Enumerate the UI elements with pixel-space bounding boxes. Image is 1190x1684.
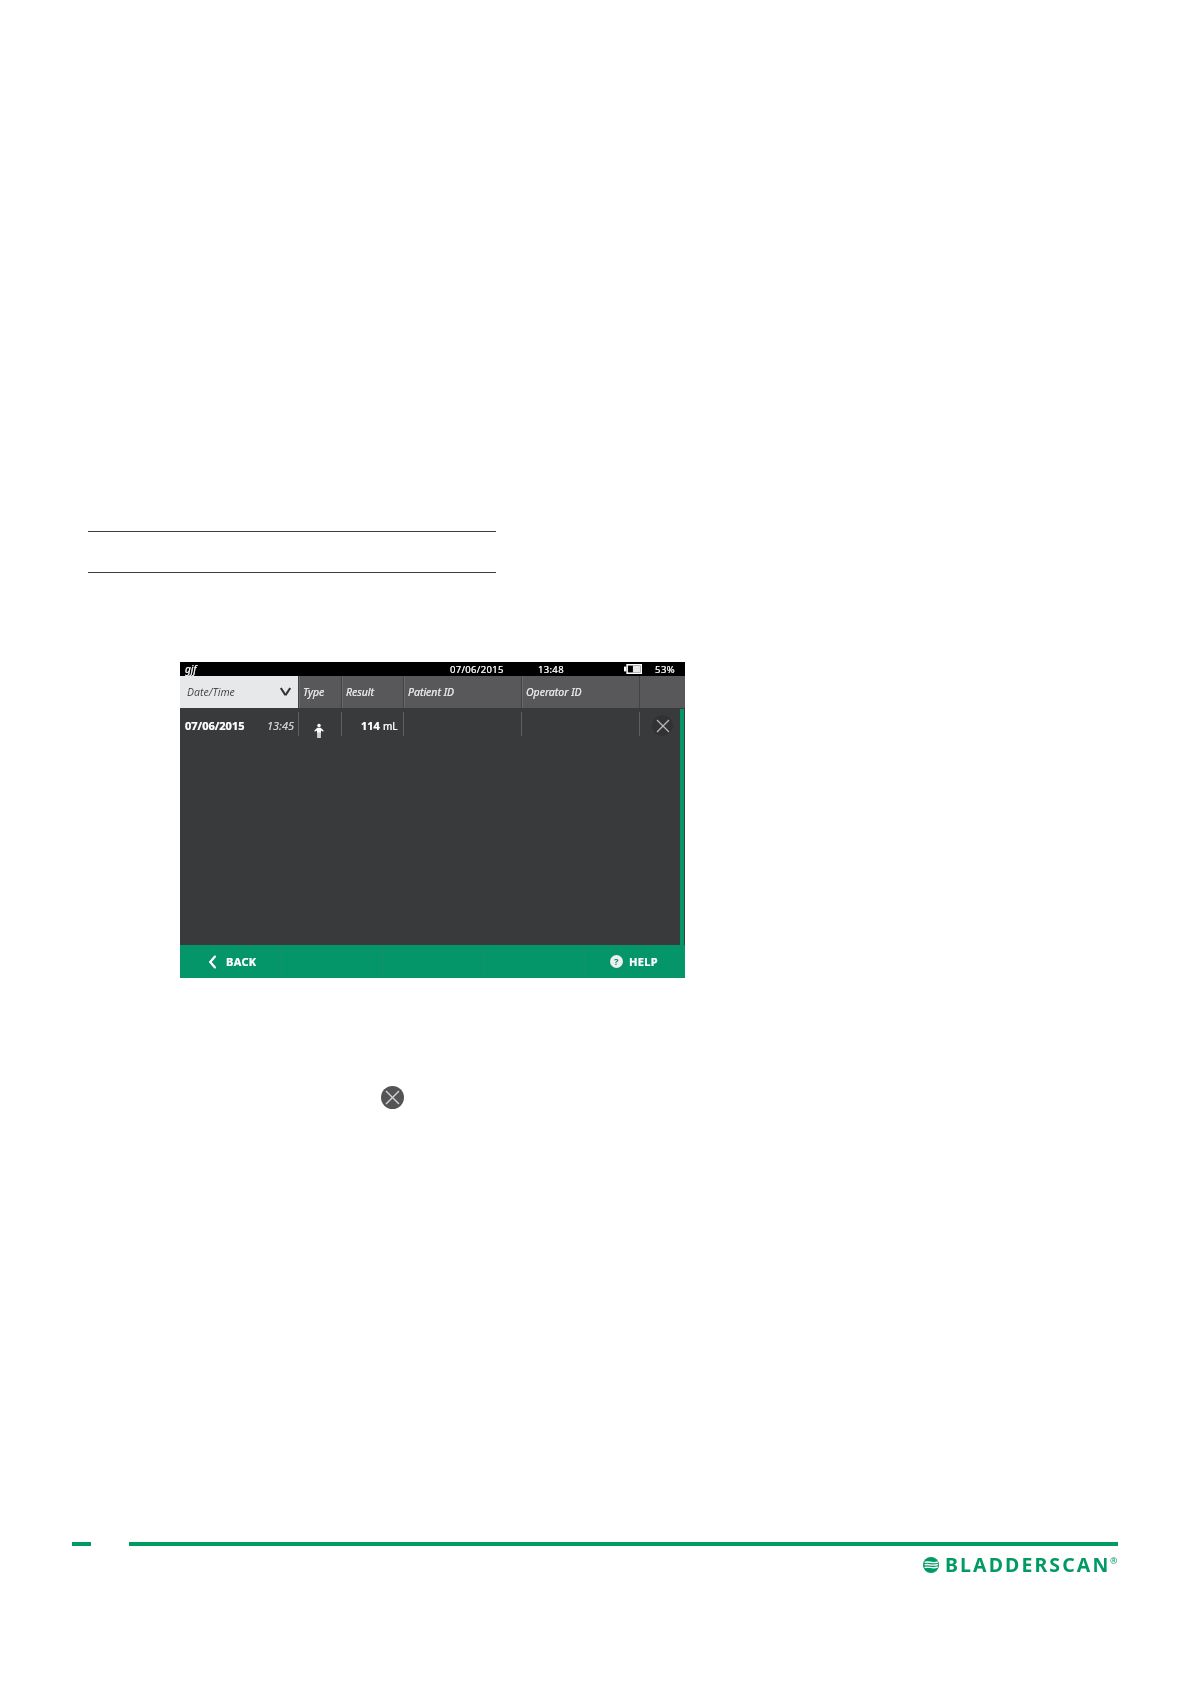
staticText: Date/Time	[187, 685, 235, 699]
staticText: ®	[1110, 1554, 1118, 1566]
staticText: BACK	[226, 954, 257, 969]
button[interactable]: Patient ID	[403, 676, 521, 708]
button[interactable]: ?	[584, 945, 685, 978]
staticText: HELP	[629, 954, 658, 969]
button[interactable]: Operator ID	[521, 676, 639, 708]
staticText: mL	[383, 719, 398, 733]
staticText: Patient ID	[408, 685, 455, 699]
staticText: 114	[361, 718, 380, 733]
button[interactable]	[639, 676, 685, 708]
staticText: 13:48	[538, 663, 564, 676]
staticText: ?	[614, 955, 619, 968]
staticText: Type	[303, 685, 325, 699]
staticText: 13:45	[267, 718, 295, 733]
button[interactable]: Type	[298, 676, 341, 708]
staticText: Result	[346, 685, 375, 699]
button[interactable]: Delete record	[652, 715, 673, 736]
button[interactable]: Result	[341, 676, 403, 708]
button[interactable]: BACK	[180, 945, 281, 978]
staticText: 07/06/2015	[450, 663, 504, 676]
staticText: BLADDERSCAN	[945, 1551, 1111, 1578]
staticText: 07/06/2015	[185, 718, 245, 733]
button[interactable]: 07/06/2015	[180, 708, 685, 742]
staticText: gjf	[185, 662, 197, 676]
button[interactable]: Delete	[381, 1086, 404, 1109]
staticText: Operator ID	[526, 685, 582, 699]
staticText: 53%	[655, 663, 676, 676]
button[interactable]: Date/Time	[180, 676, 298, 708]
